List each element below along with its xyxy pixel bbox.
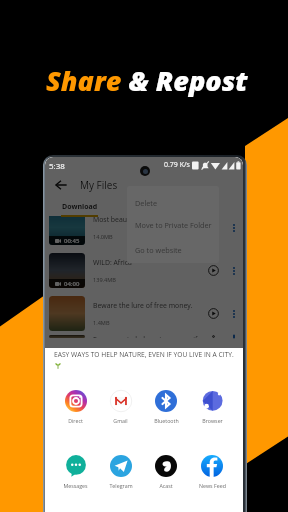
button[interactable]: Move to Private Folder	[127, 214, 219, 235]
button[interactable]: News Feed	[189, 455, 235, 489]
staticText: Browser	[202, 417, 223, 424]
staticText: Acast	[159, 482, 173, 489]
button[interactable]: Messages	[53, 455, 98, 489]
button[interactable]: Play	[206, 263, 221, 278]
staticText: EASY WAYS TO HELP NATURE, EVEN IF YOU LI…	[54, 350, 234, 359]
button[interactable]: More options	[228, 222, 240, 234]
button[interactable]: Go to website	[127, 239, 219, 260]
button[interactable]: Beware the lure of free money.	[49, 292, 240, 335]
button[interactable]: Bluetooth	[143, 390, 189, 424]
staticText: 0.79 K/s	[164, 160, 190, 170]
button[interactable]: Download	[61, 197, 98, 216]
button[interactable]: Play	[206, 220, 221, 235]
button[interactable]: Telegram	[98, 455, 143, 489]
staticText: Share	[46, 62, 129, 99]
button[interactable]: More options	[228, 335, 240, 338]
staticText: Gmail	[113, 417, 128, 424]
button[interactable]: Play	[206, 306, 221, 321]
staticText: Easy ways to help nature, even if	[93, 335, 198, 338]
staticText: Telegram	[109, 482, 133, 489]
staticText: WILD: Africa	[93, 258, 132, 267]
button[interactable]: Acast	[143, 455, 189, 489]
staticText: Messages	[63, 482, 88, 489]
button[interactable]: Delete	[127, 192, 219, 213]
button[interactable]: Play	[206, 335, 221, 338]
button[interactable]: More options	[228, 265, 240, 277]
button[interactable]: Direct	[53, 390, 98, 424]
staticText: 5:38	[49, 160, 65, 171]
button[interactable]: Browser	[189, 390, 235, 424]
staticText: Go to website	[135, 245, 182, 255]
staticText: Bluetooth	[154, 417, 179, 424]
staticText: Move to Private Folder	[135, 220, 212, 230]
staticText: 00:45	[64, 237, 80, 245]
staticText: Download	[62, 202, 98, 212]
staticText: 04:00	[64, 280, 80, 288]
staticText: 1.4MB	[93, 319, 110, 327]
button[interactable]: Gmail	[98, 390, 143, 424]
staticText: & Repost	[129, 62, 248, 99]
button[interactable]: Easy ways to help nature, even if	[49, 335, 240, 338]
staticText: Direct	[68, 417, 83, 424]
button[interactable]: 04:00	[49, 249, 240, 292]
staticText: Delete	[135, 198, 158, 208]
button[interactable]: 00:45	[49, 216, 240, 249]
staticText: Most beautiful nature relaxing video	[93, 216, 206, 224]
staticText: My Files	[80, 178, 118, 192]
staticText: 139.4MB	[93, 276, 116, 284]
button[interactable]: Back	[52, 176, 70, 194]
button[interactable]: More options	[228, 308, 240, 320]
staticText: News Feed	[199, 482, 226, 489]
staticText: 14.0MB	[93, 233, 113, 241]
staticText: Beware the lure of free money.	[93, 301, 193, 310]
